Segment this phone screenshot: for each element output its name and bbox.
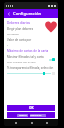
staticText: Mostrar filtrados tal y carta [7, 55, 44, 59]
button[interactable]: Home [27, 119, 36, 126]
staticText: Sin definir [7, 32, 19, 35]
button[interactable]: Toggle setting [49, 58, 55, 61]
button[interactable]: Mostrar filtrados tal y carta [7, 55, 55, 63]
staticText: Deberes diarios [7, 21, 33, 25]
button[interactable]: Elegir plan deberes [7, 27, 55, 35]
staticText: OK [29, 106, 34, 110]
staticText: ACEPTAR DE USO [30, 114, 46, 117]
staticText: Valor de carta por deberes [7, 38, 42, 42]
staticText: Configuración [13, 11, 42, 17]
staticText: CERRAR [19, 114, 27, 117]
button[interactable]: CERRAR [17, 114, 28, 117]
staticText: Elegir plan deberes [7, 27, 36, 31]
button[interactable]: Valor de carta por deberes [7, 38, 55, 46]
button[interactable]: Favorite [44, 20, 57, 33]
staticText: Solo si acabó con el sitio [7, 60, 36, 63]
button[interactable]: Recents [42, 119, 51, 126]
button[interactable]: Back [11, 119, 20, 126]
button[interactable]: ACEPTAR DE USO [30, 114, 46, 117]
staticText: 1 [7, 43, 9, 46]
button[interactable]: % transparencia filtrada, selección de c… [7, 66, 55, 75]
staticText: Máximo de cartas de la carta de entrada … [7, 49, 51, 53]
button[interactable]: OK [7, 105, 55, 111]
button[interactable]: Back [4, 9, 13, 18]
staticText: % transparencia filtrada, selección de c… [7, 66, 55, 70]
